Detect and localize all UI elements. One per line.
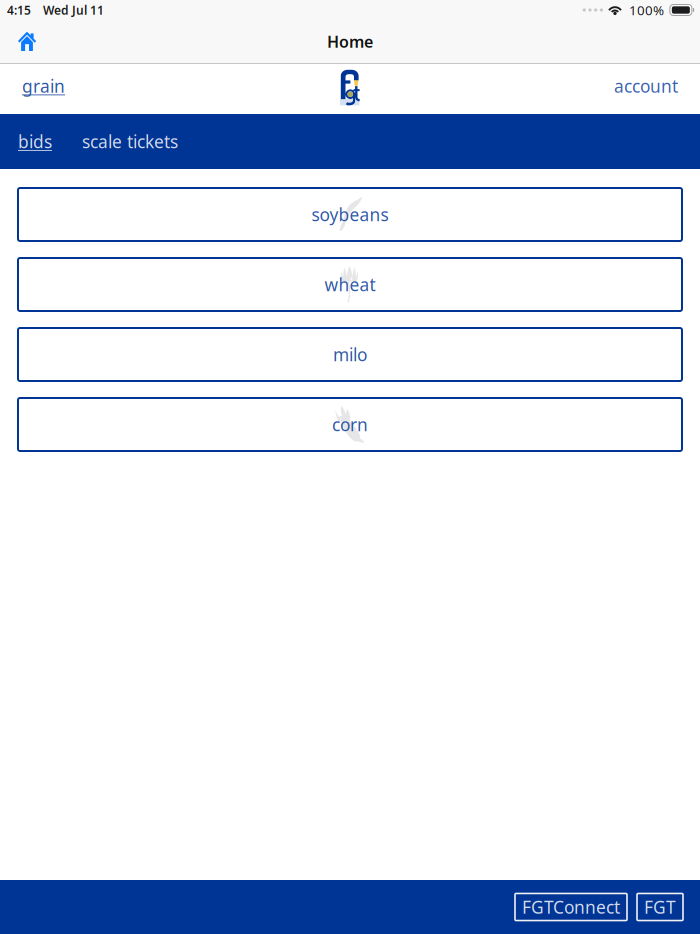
staticText: corn (332, 413, 368, 436)
button[interactable]: FGT (637, 893, 683, 920)
staticText: wheat (324, 273, 375, 296)
button[interactable]: soybeans (18, 188, 682, 241)
staticText: soybeans (311, 203, 388, 226)
staticText: 4:15 (7, 2, 31, 18)
staticText: bids (18, 130, 52, 153)
button[interactable]: corn (18, 398, 682, 451)
staticText: account (614, 74, 678, 97)
button[interactable]: milo (18, 328, 682, 381)
staticText: scale tickets (82, 130, 178, 153)
staticText: grain (22, 74, 65, 97)
button[interactable]: account (596, 64, 700, 113)
staticText: FGT (644, 895, 676, 918)
staticText: Wed Jul 11 (43, 2, 104, 18)
button[interactable]: FGTConnect (515, 893, 627, 920)
staticText: FGTConnect (522, 895, 620, 918)
button[interactable]: wheat (18, 258, 682, 311)
button[interactable]: Home (0, 21, 51, 62)
button[interactable]: scale tickets (66, 114, 194, 169)
staticText: Home (327, 31, 373, 52)
staticText: 100% (629, 1, 664, 19)
button[interactable]: bids (0, 114, 66, 169)
button[interactable]: grain (0, 64, 83, 113)
staticText: milo (333, 343, 367, 366)
